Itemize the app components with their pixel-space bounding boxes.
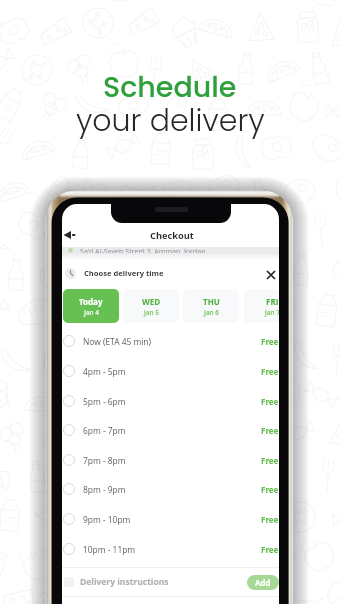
staticText: Add xyxy=(255,577,271,588)
staticText: Free xyxy=(261,544,279,555)
button[interactable]: 8pm - 9pm xyxy=(62,474,279,504)
staticText: WED xyxy=(142,296,161,307)
staticText: FRI xyxy=(266,296,279,307)
staticText: 8pm - 9pm xyxy=(83,484,126,495)
staticText: 10pm - 11pm xyxy=(83,544,136,555)
staticText: Checkout xyxy=(150,229,194,242)
staticText: Sa'd Al-Sayeh Street 3, Amman, Jordan xyxy=(80,246,206,253)
staticText: 7pm - 8pm xyxy=(83,455,126,466)
button[interactable]: Add xyxy=(247,575,279,590)
staticText: Schedule xyxy=(103,67,237,107)
staticText: your delivery xyxy=(76,100,265,142)
staticText: THU xyxy=(203,296,220,307)
staticText: Free xyxy=(261,514,279,525)
button[interactable]: WED xyxy=(123,289,179,323)
staticText: Free xyxy=(261,484,279,495)
staticText: Delivery instructions xyxy=(80,576,169,588)
button[interactable]: Close xyxy=(264,268,278,282)
staticText: Free xyxy=(261,425,279,436)
button[interactable]: 4pm - 5pm xyxy=(62,356,279,386)
button[interactable]: Now (ETA 45 min) xyxy=(62,326,279,356)
staticText: Jan 6 xyxy=(204,308,219,317)
button[interactable]: 9pm - 10pm xyxy=(62,504,279,534)
staticText: Choose delivery time xyxy=(84,268,164,278)
button[interactable]: 7pm - 8pm xyxy=(62,445,279,475)
staticText: Jan 5 xyxy=(144,308,159,317)
staticText: Free xyxy=(261,366,279,377)
staticText: 4pm - 5pm xyxy=(83,366,126,377)
staticText: 9pm - 10pm xyxy=(83,514,131,525)
button[interactable]: Delivery instructions xyxy=(62,568,279,596)
staticText: Jan 7 xyxy=(265,308,279,317)
button[interactable]: Today xyxy=(63,289,119,323)
staticText: Free xyxy=(261,336,279,347)
button[interactable]: THU xyxy=(183,289,239,323)
button[interactable]: FRI xyxy=(244,289,279,323)
button[interactable]: 6pm - 7pm xyxy=(62,415,279,445)
staticText: 5pm - 6pm xyxy=(83,396,126,407)
staticText: Free xyxy=(261,396,279,407)
staticText: 6pm - 7pm xyxy=(83,425,126,436)
button[interactable]: 10pm - 11pm xyxy=(62,534,279,564)
staticText: Now (ETA 45 min) xyxy=(83,336,151,347)
staticText: Today xyxy=(79,296,103,307)
button[interactable]: 5pm - 6pm xyxy=(62,386,279,416)
staticText: Free xyxy=(261,455,279,466)
button[interactable]: Back xyxy=(62,227,80,243)
staticText: Jan 4 xyxy=(84,308,99,317)
